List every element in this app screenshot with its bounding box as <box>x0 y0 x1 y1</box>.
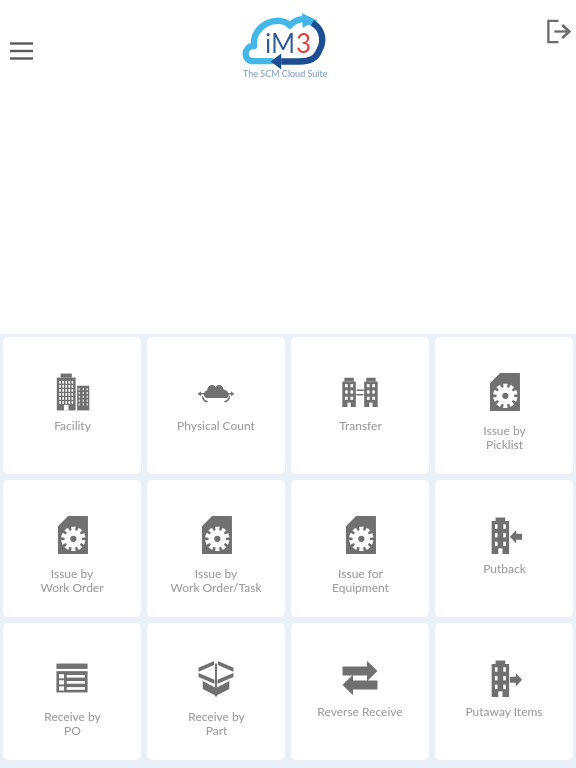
staticText: Reverse Receive <box>317 704 403 718</box>
button[interactable]: Receive by Part <box>147 623 285 760</box>
staticText: Issue by Picklist <box>483 423 526 451</box>
staticText: Transfer <box>339 418 382 432</box>
button[interactable]: Logout <box>541 14 575 48</box>
staticText: Putback <box>483 561 526 575</box>
button[interactable]: Issue by Work Order/Task <box>147 480 285 617</box>
staticText: Receive by Part <box>188 709 245 737</box>
button[interactable]: Physical Count <box>147 337 285 474</box>
staticText: iM <box>265 27 296 58</box>
staticText: The SCM Cloud Suite <box>243 68 328 79</box>
staticText: Issue by Work Order <box>40 566 104 594</box>
staticText: Putaway Items <box>465 704 543 718</box>
button[interactable]: Facility <box>3 337 141 474</box>
button[interactable]: Putaway Items <box>435 623 573 760</box>
button[interactable]: Menu <box>3 32 39 68</box>
button[interactable]: Putback <box>435 480 573 617</box>
staticText: Issue by Work Order/Task <box>170 566 262 594</box>
staticText: Receive by PO <box>44 709 101 737</box>
button[interactable]: Issue by Work Order <box>3 480 141 617</box>
button[interactable]: Issue for Equipment <box>291 480 429 617</box>
staticText: Facility <box>54 418 91 432</box>
button[interactable]: Receive by PO <box>3 623 141 760</box>
button[interactable]: Issue by Picklist <box>435 337 573 474</box>
staticText: Physical Count <box>177 418 255 432</box>
staticText: 3 <box>296 27 312 58</box>
button[interactable]: Transfer <box>291 337 429 474</box>
staticText: Issue for Equipment <box>332 566 389 594</box>
button[interactable]: Reverse Receive <box>291 623 429 760</box>
